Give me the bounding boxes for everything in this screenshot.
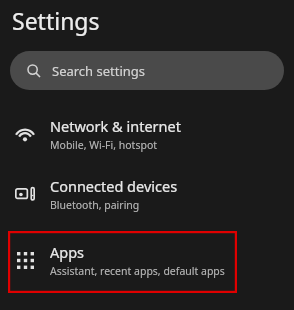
- staticText: Settings: [12, 5, 100, 36]
- staticText: Bluetooth, pairing: [50, 198, 140, 212]
- staticText: Connected devices: [50, 176, 178, 196]
- button[interactable]: Connected devices: [0, 168, 294, 220]
- staticText: Search settings: [52, 62, 146, 80]
- staticText: Assistant, recent apps, default apps: [50, 264, 225, 278]
- staticText: Apps: [50, 242, 85, 262]
- staticText: Network & internet: [50, 116, 181, 136]
- staticText: Mobile, Wi-Fi, hotspot: [50, 138, 158, 152]
- button[interactable]: Network & internet: [0, 108, 294, 160]
- button[interactable]: Apps: [0, 234, 294, 286]
- other: Search: [27, 64, 41, 78]
- button[interactable]: Search: [10, 51, 284, 90]
